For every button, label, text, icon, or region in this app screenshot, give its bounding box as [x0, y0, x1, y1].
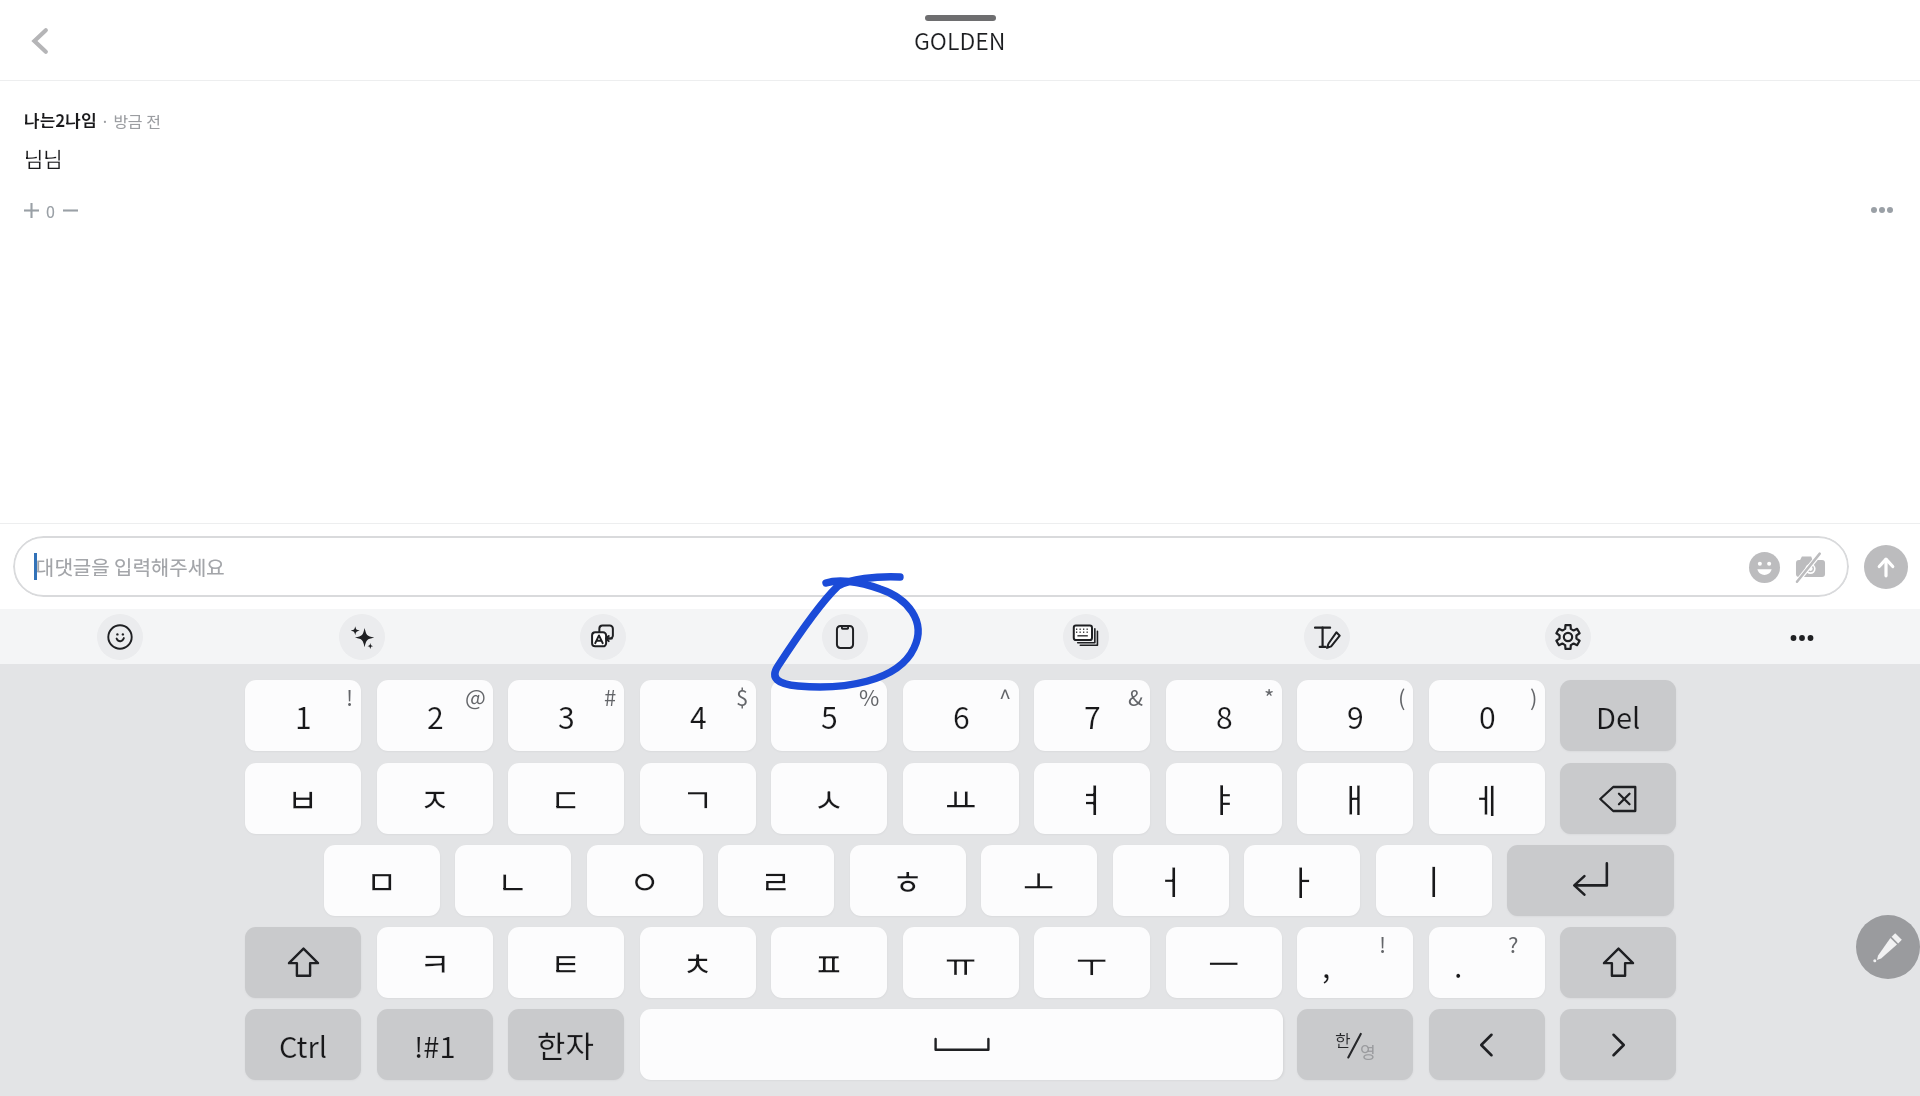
staticText: ㅇ: [629, 856, 661, 905]
button[interactable]: ㅍ: [771, 927, 887, 998]
button[interactable]: Send: [1864, 545, 1908, 589]
button[interactable]: ㄷ: [508, 763, 624, 834]
button[interactable]: Emoji: [1744, 547, 1784, 587]
staticText: ㅎ: [892, 856, 924, 905]
button[interactable]: Compose note: [1856, 915, 1920, 979]
button[interactable]: Shift: [245, 927, 361, 998]
button[interactable]: Attach photo: [1790, 547, 1830, 587]
button[interactable]: ㅂ: [245, 763, 361, 834]
staticText: %: [859, 680, 880, 712]
button[interactable]: 0: [1429, 680, 1545, 751]
staticText: ㅂ: [287, 774, 319, 823]
staticText: 7: [1084, 694, 1101, 737]
button[interactable]: Settings: [1545, 614, 1591, 660]
button[interactable]: Ctrl: [245, 1009, 361, 1080]
button[interactable]: 6: [903, 680, 1019, 751]
button[interactable]: Korean English toggle: [1297, 1009, 1413, 1080]
staticText: !: [346, 680, 354, 712]
staticText: !: [1379, 927, 1387, 959]
staticText: !#1: [414, 1024, 456, 1066]
button[interactable]: ㅁ: [324, 845, 440, 916]
button[interactable]: ㅊ: [640, 927, 756, 998]
button[interactable]: More options: [1860, 188, 1904, 232]
staticText: GOLDEN: [914, 23, 1006, 56]
staticText: ㅅ: [813, 774, 845, 823]
button[interactable]: 9: [1297, 680, 1413, 751]
button[interactable]: 한자: [508, 1009, 624, 1080]
button[interactable]: ㅠ: [903, 927, 1019, 998]
button[interactable]: Del: [1560, 680, 1676, 751]
button[interactable]: More tools: [1782, 618, 1822, 658]
staticText: 나는2나임: [24, 107, 97, 132]
button[interactable]: Like: [16, 195, 46, 225]
button[interactable]: Clipboard: [822, 614, 868, 660]
button[interactable]: Dislike: [55, 195, 85, 225]
button[interactable]: ㅎ: [850, 845, 966, 916]
button[interactable]: 5: [771, 680, 887, 751]
staticText: ㄴ: [497, 856, 529, 905]
button[interactable]: 7: [1034, 680, 1150, 751]
button[interactable]: 8: [1166, 680, 1282, 751]
staticText: 4: [690, 694, 707, 737]
staticText: 님님: [24, 143, 63, 173]
button[interactable]: ,: [1297, 927, 1413, 998]
staticText: ㅔ: [1471, 774, 1503, 823]
staticText: 3: [558, 694, 575, 737]
button[interactable]: Back: [12, 12, 70, 70]
button[interactable]: ㅡ: [1166, 927, 1282, 998]
staticText: 6: [953, 694, 970, 737]
button[interactable]: ㅅ: [771, 763, 887, 834]
button[interactable]: ㄱ: [640, 763, 756, 834]
button[interactable]: ㅇ: [587, 845, 703, 916]
staticText: Del: [1596, 695, 1641, 737]
button[interactable]: ㅌ: [508, 927, 624, 998]
staticText: ^: [999, 680, 1012, 712]
button[interactable]: ㅐ: [1297, 763, 1413, 834]
button[interactable]: 1: [245, 680, 361, 751]
button[interactable]: 4: [640, 680, 756, 751]
staticText: 0: [46, 199, 55, 222]
button[interactable]: 3: [508, 680, 624, 751]
staticText: ㄹ: [760, 856, 792, 905]
button[interactable]: Backspace: [1560, 763, 1676, 834]
button[interactable]: ㅈ: [377, 763, 493, 834]
button[interactable]: Move cursor right: [1560, 1009, 1676, 1080]
button[interactable]: ㅗ: [981, 845, 1097, 916]
button[interactable]: ㅔ: [1429, 763, 1545, 834]
staticText: · 방금 전: [97, 109, 161, 132]
staticText: $: [736, 680, 749, 712]
button[interactable]: ㄹ: [718, 845, 834, 916]
staticText: ㅈ: [419, 774, 451, 823]
button[interactable]: Text editing: [1304, 614, 1350, 660]
button[interactable]: Keyboard layout: [1063, 614, 1109, 660]
button[interactable]: ㅏ: [1244, 845, 1360, 916]
button[interactable]: Enter: [1507, 845, 1674, 916]
button[interactable]: .: [1429, 927, 1545, 998]
staticText: &: [1128, 680, 1143, 712]
button[interactable]: ㅕ: [1034, 763, 1150, 834]
button[interactable]: 대댓글을 입력해주세요: [13, 536, 1849, 597]
staticText: ㅣ: [1418, 856, 1450, 905]
button[interactable]: AI suggestions: [339, 614, 385, 660]
button[interactable]: Move cursor left: [1429, 1009, 1545, 1080]
button[interactable]: ㅣ: [1376, 845, 1492, 916]
staticText: 한: [1335, 1027, 1351, 1052]
staticText: ㅠ: [945, 938, 977, 987]
button[interactable]: ㅛ: [903, 763, 1019, 834]
button[interactable]: Translate: [580, 614, 626, 660]
staticText: .: [1454, 943, 1463, 986]
button[interactable]: ㅓ: [1113, 845, 1229, 916]
staticText: ㄷ: [550, 774, 582, 823]
button[interactable]: Emoji: [97, 614, 143, 660]
button[interactable]: 2: [377, 680, 493, 751]
button[interactable]: ㅜ: [1034, 927, 1150, 998]
staticText: ㅑ: [1208, 774, 1240, 823]
button[interactable]: Space: [640, 1009, 1283, 1080]
staticText: 8: [1216, 694, 1233, 737]
button[interactable]: ㅋ: [377, 927, 493, 998]
button[interactable]: !#1: [377, 1009, 493, 1080]
staticText: 5: [821, 694, 838, 737]
button[interactable]: ㅑ: [1166, 763, 1282, 834]
button[interactable]: ㄴ: [455, 845, 571, 916]
button[interactable]: Shift: [1560, 927, 1676, 998]
